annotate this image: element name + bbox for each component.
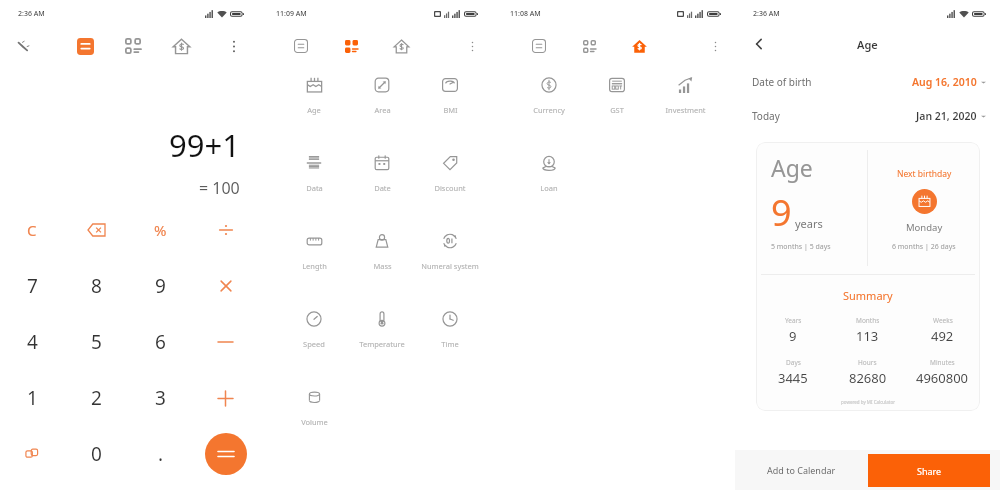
staticText: 4 [27, 329, 38, 355]
staticText: 113 [856, 327, 879, 345]
staticText: Months [856, 316, 880, 325]
staticText: 3 [155, 385, 166, 411]
button[interactable]: 0 [64, 426, 128, 482]
staticText: 1 [27, 385, 38, 411]
other: Equals [205, 433, 247, 475]
staticText: 0 [91, 441, 102, 467]
staticText: 11:09 AM [276, 9, 307, 19]
button[interactable]: % [128, 202, 193, 258]
button[interactable]: 3 [128, 370, 193, 426]
button[interactable]: Scientific [12, 35, 34, 57]
staticText: 11:08 AM [510, 9, 541, 19]
staticText: 2:36 AM [753, 9, 780, 19]
button[interactable]: Data [280, 152, 348, 230]
staticText: . [158, 441, 164, 467]
staticText: Data [306, 183, 323, 193]
staticText: C [27, 220, 37, 240]
staticText: 2 [91, 385, 102, 411]
button[interactable]: More options [705, 36, 725, 56]
button[interactable]: Date [348, 152, 416, 230]
button[interactable]: 5 [64, 314, 128, 370]
staticText: 99+1 [169, 124, 240, 166]
staticText: 9 [155, 273, 166, 299]
staticText: years [795, 216, 823, 231]
staticText: Summary [843, 288, 893, 303]
button[interactable]: 6 [128, 314, 193, 370]
staticText: 5 months | 5 days [771, 242, 831, 252]
button[interactable]: 8 [64, 258, 128, 314]
button[interactable]: Back [747, 32, 771, 56]
button[interactable]: 1 [0, 370, 64, 426]
button[interactable]: Converters [339, 34, 363, 58]
staticText: Days [786, 358, 801, 367]
staticText: Hours [858, 358, 877, 367]
button[interactable]: Temperature [348, 308, 416, 386]
button[interactable]: 2 [64, 370, 128, 426]
staticText: 4960800 [916, 369, 969, 387]
button[interactable]: Currency [515, 74, 583, 152]
button[interactable]: Finance [627, 34, 651, 58]
button[interactable]: Finance [168, 33, 194, 59]
staticText: 82680 [849, 369, 887, 387]
button[interactable]: Loan [515, 152, 583, 230]
staticText: Age [771, 152, 813, 183]
staticText: Age [857, 37, 878, 52]
button[interactable]: 9 [128, 258, 193, 314]
button[interactable]: 7 [0, 258, 64, 314]
button[interactable]: Convert [0, 426, 64, 482]
staticText: Area [374, 105, 391, 115]
staticText: Aug 16, 2010 [912, 75, 977, 89]
button[interactable]: Area [348, 74, 416, 152]
button[interactable]: . [128, 426, 193, 482]
staticText: % [154, 220, 167, 240]
button[interactable]: Multiply [193, 258, 258, 314]
button[interactable]: More options [462, 36, 482, 56]
button[interactable]: Equals [193, 426, 258, 482]
button[interactable]: Date of birth [735, 65, 1000, 99]
button[interactable]: Calculator [72, 33, 98, 59]
button[interactable]: Backspace [64, 202, 128, 258]
button[interactable]: Converters [120, 33, 146, 59]
staticText: Time [441, 339, 459, 349]
staticText: = 100 [199, 177, 240, 199]
button[interactable]: More options [222, 34, 246, 58]
button[interactable]: Time [416, 308, 484, 386]
button[interactable]: Volume [280, 386, 348, 464]
button[interactable]: 4 [0, 314, 64, 370]
staticText: 2:36 AM [18, 9, 45, 19]
button[interactable]: Discount [416, 152, 484, 230]
button[interactable]: Add [193, 370, 258, 426]
button[interactable]: Calculator [527, 34, 551, 58]
button[interactable]: Add to Calendar [735, 450, 868, 490]
staticText: 8 [91, 273, 102, 299]
button[interactable]: Length [280, 230, 348, 308]
staticText: Volume [301, 417, 328, 427]
staticText: 6 [155, 329, 166, 355]
staticText: 6 months | 26 days [892, 242, 956, 252]
staticText: Discount [434, 183, 466, 193]
button[interactable]: Investment [651, 74, 719, 152]
button[interactable]: GST [583, 74, 651, 152]
button[interactable]: C [0, 202, 64, 258]
staticText: 9 [771, 188, 792, 237]
button[interactable]: Converters [577, 34, 601, 58]
staticText: 3445 [778, 369, 808, 387]
button[interactable]: Finance [389, 34, 413, 58]
staticText: Next birthday [897, 168, 952, 180]
button[interactable]: Calculator [289, 34, 313, 58]
button[interactable]: Numeral system [416, 230, 484, 308]
button[interactable]: Age [280, 74, 348, 152]
button[interactable]: Speed [280, 308, 348, 386]
button[interactable]: Mass [348, 230, 416, 308]
button[interactable]: Share [868, 454, 990, 487]
button[interactable]: Subtract [193, 314, 258, 370]
staticText: 492 [931, 327, 954, 345]
button[interactable]: BMI [416, 74, 484, 152]
staticText: BMI [443, 105, 458, 115]
staticText: GST [610, 105, 624, 115]
button[interactable]: Divide [193, 202, 258, 258]
button[interactable]: Today [735, 99, 1000, 133]
staticText: Minutes [930, 358, 955, 367]
staticText: Temperature [359, 339, 405, 349]
staticText: powered by MI Calculator [841, 399, 895, 405]
